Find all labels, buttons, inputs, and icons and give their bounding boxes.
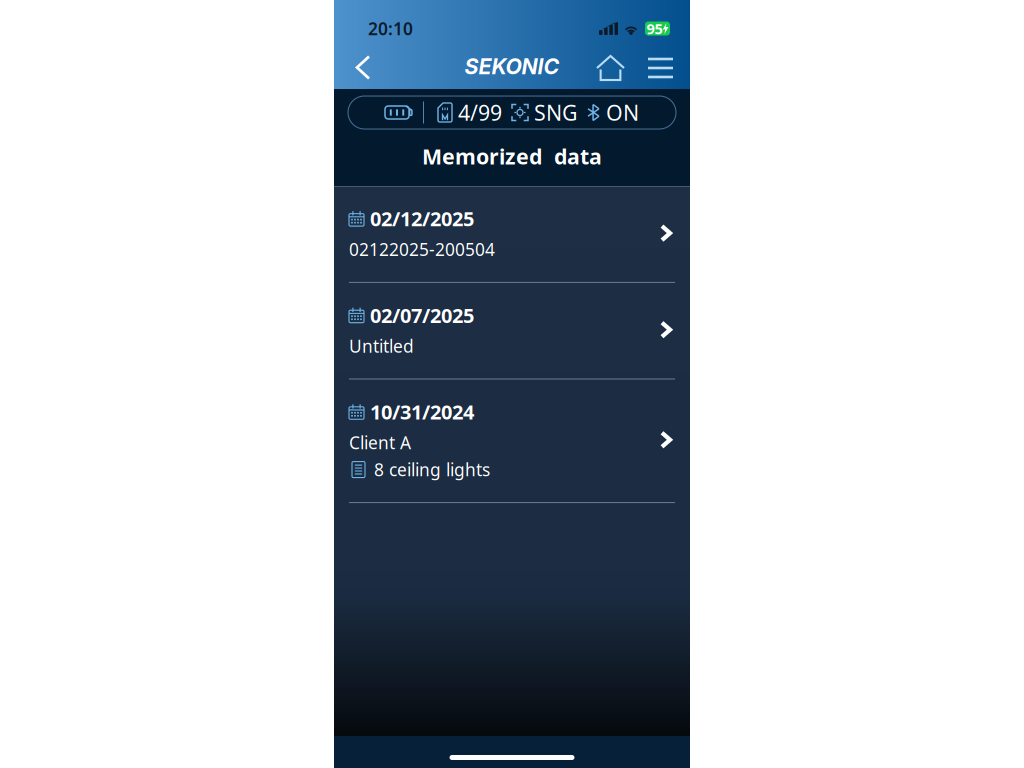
staticText: 8 ceiling lights xyxy=(374,458,490,481)
staticText: 02122025-200504 xyxy=(349,238,495,261)
staticText: SNG xyxy=(534,98,578,127)
button[interactable]: Back xyxy=(345,47,381,85)
button[interactable]: Home xyxy=(589,47,632,86)
staticText: Memorized data xyxy=(422,142,602,170)
button[interactable]: 02/12/2025 xyxy=(334,186,690,282)
staticText: 02/12/2025 xyxy=(370,205,474,232)
staticText: 02/07/2025 xyxy=(370,302,474,328)
staticText: 95 xyxy=(646,19,662,38)
staticText: 4/99 xyxy=(458,98,502,127)
button[interactable]: 02/07/2025 xyxy=(334,283,690,378)
staticText: 20:10 xyxy=(368,17,413,40)
staticText: Untitled xyxy=(349,334,414,357)
button[interactable]: 10/31/2024 xyxy=(334,379,690,502)
staticText: 10/31/2024 xyxy=(370,398,474,425)
staticText: Client A xyxy=(349,431,411,454)
staticText: ON xyxy=(606,98,639,127)
button[interactable]: Menu xyxy=(640,47,681,86)
staticText: SEKONIC xyxy=(464,54,559,79)
